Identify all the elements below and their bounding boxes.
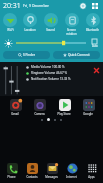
button[interactable]: Edit quick settings xyxy=(90,1,99,10)
staticText: Phone xyxy=(7,175,16,179)
button[interactable]: Media Volume 100.00 % xyxy=(0,62,103,96)
staticText: Wi-Fi xyxy=(7,28,14,32)
button[interactable]: Apps xyxy=(82,162,101,179)
staticText: Google xyxy=(83,112,93,116)
button[interactable]: Camera xyxy=(28,98,50,116)
staticText: Fri, 9 December xyxy=(23,3,49,8)
staticText: Quick Connect xyxy=(68,53,90,57)
button[interactable]: Location xyxy=(20,11,40,37)
button[interactable]: Gmail xyxy=(4,98,26,116)
button[interactable]: Dismiss notification xyxy=(89,62,103,96)
button[interactable]: Settings xyxy=(78,1,87,10)
staticText: Camera xyxy=(34,112,45,116)
staticText: Media Volume 100.00 % xyxy=(31,65,65,69)
button[interactable]: Quick Connect xyxy=(53,51,100,59)
button[interactable]: Contacts xyxy=(22,162,41,179)
staticText: Messages xyxy=(45,175,58,179)
button[interactable]: Google xyxy=(77,98,99,116)
staticText: Screen rotation xyxy=(66,28,77,35)
button[interactable]: Screen rotation xyxy=(61,11,82,37)
button[interactable]: S Finder xyxy=(3,51,50,59)
button[interactable]: Brightness xyxy=(3,38,13,48)
staticText: Ringtone Volume 46.67 % xyxy=(31,71,67,75)
staticText: S Finder xyxy=(23,53,36,57)
staticText: Sound xyxy=(46,28,55,32)
staticText: Contacts xyxy=(26,175,38,179)
staticText: Apps xyxy=(88,175,95,179)
button[interactable]: Phone xyxy=(2,162,21,179)
staticText: Auto xyxy=(92,44,98,48)
button[interactable]: Auto xyxy=(89,39,100,48)
staticText: Internet xyxy=(66,175,77,179)
staticText: 20:31 xyxy=(3,1,21,11)
button[interactable]: Messages xyxy=(42,162,61,179)
staticText: Gmail xyxy=(11,112,19,116)
button[interactable]: Bluetooth xyxy=(82,11,103,37)
staticText: Play Store xyxy=(57,112,71,116)
staticText: Bluetooth xyxy=(86,28,99,32)
button[interactable]: Sound xyxy=(40,11,61,37)
button[interactable]: Internet xyxy=(62,162,81,179)
button[interactable] xyxy=(16,38,86,48)
button[interactable]: Play Store xyxy=(53,98,75,116)
button[interactable]: Wi-Fi xyxy=(0,11,20,37)
staticText: Notification Volume 13.33 % xyxy=(31,77,71,81)
staticText: Location xyxy=(24,28,36,32)
